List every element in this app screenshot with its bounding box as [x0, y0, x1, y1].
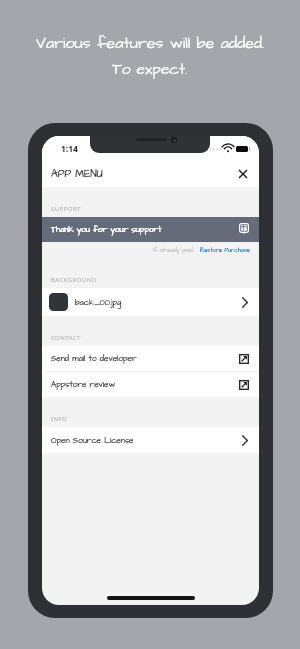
staticText: Send mail to developer — [51, 353, 137, 364]
staticText: APP MENU — [51, 167, 103, 182]
staticText: Send mail to developer — [51, 353, 137, 364]
staticText: Thank you for your support — [51, 224, 162, 235]
staticText: 1:14 — [61, 143, 78, 155]
staticText: back_00.jpg — [75, 297, 122, 308]
staticText: SUPPORT — [51, 205, 81, 213]
button[interactable]: Appstore review — [42, 372, 259, 397]
staticText: INFO — [51, 415, 68, 423]
button[interactable]: Open Source License — [42, 427, 259, 453]
staticText: Open Source License — [51, 435, 134, 446]
staticText: BACKGROUND — [51, 276, 97, 284]
staticText: CONTACT — [51, 334, 81, 342]
staticText: Open Source License — [51, 435, 134, 446]
staticText: Appstore review — [51, 379, 116, 390]
staticText: Various features will be added. — [36, 32, 265, 54]
button[interactable]: Send mail to developer — [42, 346, 259, 371]
staticText: Appstore review — [51, 379, 116, 390]
staticText: back_00.jpg — [75, 297, 122, 308]
button[interactable]: Restore Purchase — [200, 246, 250, 254]
staticText: To expect. — [112, 59, 188, 81]
button[interactable]: Close — [233, 164, 253, 184]
button[interactable]: back_00.jpg — [42, 288, 259, 316]
button[interactable]: Thank you for your support — [42, 217, 259, 242]
staticText: Thank you for your support — [51, 224, 162, 235]
staticText: If already paid... — [153, 246, 196, 254]
staticText: APP MENU — [51, 167, 103, 182]
